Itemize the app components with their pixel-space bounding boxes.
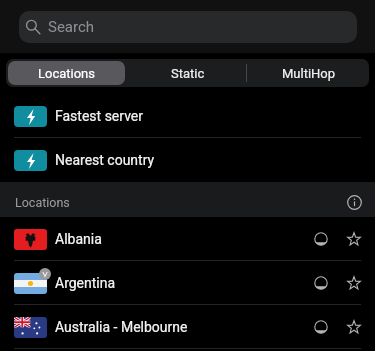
staticText: Locations	[15, 195, 70, 210]
button[interactable]: Search	[19, 11, 357, 43]
staticText: Albania	[55, 231, 102, 247]
staticText: MultiHop	[282, 66, 336, 81]
button[interactable]: Server load	[308, 314, 334, 340]
staticText: Locations	[38, 66, 96, 81]
staticText: Static	[171, 66, 205, 81]
staticText: Search	[48, 18, 95, 36]
button[interactable]: Favourite	[341, 270, 367, 296]
button[interactable]: Australia - Melbourne	[0, 305, 375, 349]
button[interactable]: Favourite	[341, 226, 367, 252]
button[interactable]: Locations	[8, 61, 125, 85]
staticText: Nearest country	[55, 152, 155, 168]
staticText: Argentina	[55, 275, 116, 291]
button[interactable]: Information	[341, 189, 367, 215]
button[interactable]: Server load	[308, 226, 334, 252]
button[interactable]: MultiHop	[250, 61, 367, 85]
staticText: Fastest server	[55, 108, 144, 124]
button[interactable]: Nearest country	[0, 138, 375, 182]
button[interactable]: Server load	[308, 270, 334, 296]
button[interactable]: Favourite	[341, 314, 367, 340]
button[interactable]: Argentina	[0, 261, 375, 305]
button[interactable]: Static	[129, 61, 246, 85]
staticText: Australia - Melbourne	[55, 319, 188, 335]
button[interactable]: Albania	[0, 217, 375, 261]
button[interactable]: Fastest server	[0, 94, 375, 138]
